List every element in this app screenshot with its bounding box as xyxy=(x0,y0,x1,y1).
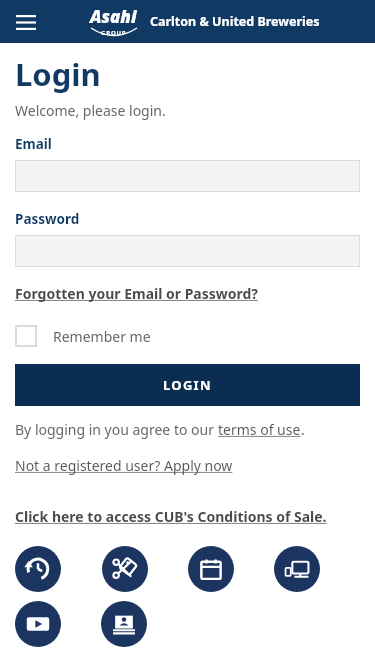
staticText: Password xyxy=(15,210,80,228)
staticText: LOGIN xyxy=(163,376,212,394)
staticText: Forgotten your Email or Password? xyxy=(15,284,259,303)
staticText: Email xyxy=(15,135,52,153)
button[interactable]: Devices xyxy=(274,546,320,592)
staticText: Login xyxy=(15,53,101,95)
button[interactable]: Deals xyxy=(102,546,148,592)
staticText: Remember me xyxy=(53,327,151,346)
staticText: Click here to access CUB's Conditions of… xyxy=(15,507,327,526)
staticText: GROUP xyxy=(101,29,127,37)
staticText: Welcome, please login. xyxy=(15,101,166,120)
button[interactable]: Remember me xyxy=(15,325,151,347)
button[interactable]: LOGIN xyxy=(15,364,360,406)
button[interactable]: Forgotten your Email or Password? xyxy=(15,284,259,303)
button[interactable]: Training xyxy=(101,601,147,647)
button[interactable]: Not a registered user? Apply now xyxy=(15,456,233,475)
button[interactable]: terms of use xyxy=(218,420,301,439)
staticText: By logging in you agree to our xyxy=(15,420,218,439)
button[interactable]: Click here to access CUB's Conditions of… xyxy=(15,507,327,526)
staticText: Asahi xyxy=(90,5,137,28)
staticText: terms of use xyxy=(218,420,301,439)
button[interactable]: Videos xyxy=(15,601,61,647)
button[interactable]: Calendar xyxy=(188,546,234,592)
button[interactable] xyxy=(15,235,360,267)
staticText: . xyxy=(301,420,305,439)
staticText: Carlton & United Breweries xyxy=(150,13,320,30)
button[interactable] xyxy=(15,160,360,192)
button[interactable]: Menu xyxy=(9,5,43,39)
button[interactable]: Order history xyxy=(15,546,61,592)
staticText: Not a registered user? Apply now xyxy=(15,456,233,475)
